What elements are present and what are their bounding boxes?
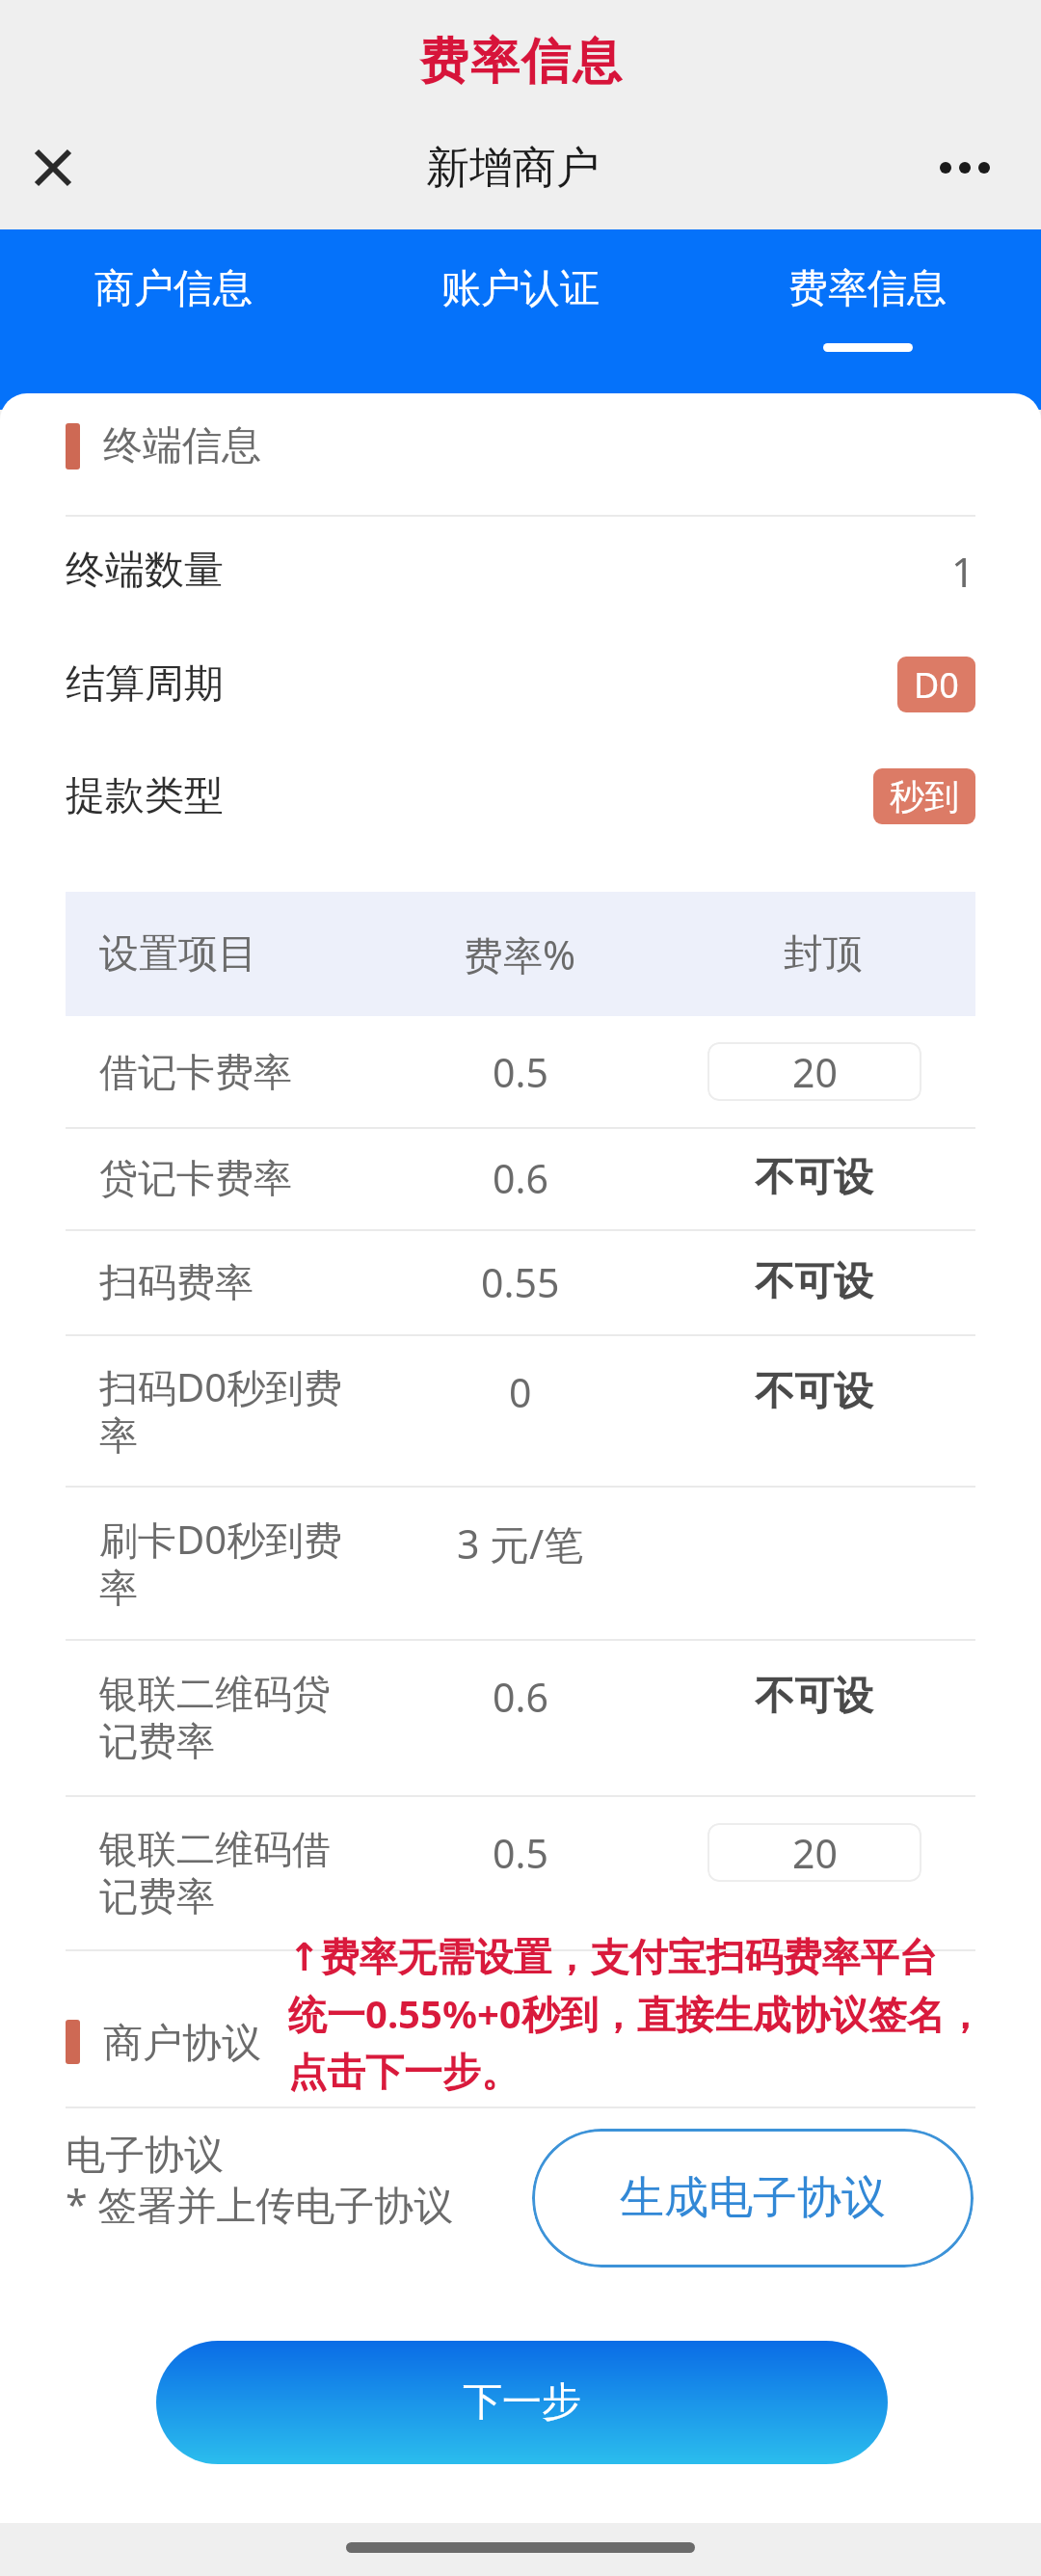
staticText: 0.5 [493, 1045, 548, 1099]
staticText: 封顶 [784, 929, 863, 979]
staticText: 贷记卡费率 [99, 1154, 292, 1202]
button[interactable]: 下一步 [156, 2341, 888, 2464]
staticText: D0 [914, 661, 959, 709]
button[interactable]: 扫码D0秒到费 率 [66, 1334, 975, 1486]
staticText: 提款类型 [66, 771, 224, 821]
staticText: 扫码D0秒到费 率 [99, 1360, 343, 1460]
button[interactable]: 提款类型 [0, 740, 1041, 852]
staticText: 不可设 [755, 1672, 873, 1722]
staticText: 结算周期 [66, 659, 224, 710]
staticText: ↑费率无需设置，支付宝扫码费率平台 统一0.55%+0秒到，直接生成协议签名， … [288, 1933, 984, 2097]
staticText: 银联二维码贷 记费率 [99, 1670, 332, 1765]
staticText: 新增商户 [426, 141, 600, 196]
button[interactable]: Close [0, 106, 106, 229]
button[interactable]: 扫码费率 [66, 1229, 975, 1334]
staticText: 费率% [464, 927, 576, 981]
staticText: 商户信息 [94, 264, 253, 314]
button[interactable]: 商户信息 [0, 229, 347, 410]
staticText: 下一步 [463, 2377, 581, 2428]
staticText: 不可设 [755, 1257, 873, 1307]
staticText: 0.55 [481, 1255, 560, 1309]
button[interactable]: 20 [707, 1042, 921, 1101]
button[interactable]: 账户认证 [347, 229, 694, 410]
staticText: 0.6 [493, 1151, 548, 1205]
staticText: 终端信息 [103, 421, 261, 471]
button[interactable]: 费率信息 [694, 229, 1041, 410]
button[interactable]: More options [920, 106, 1041, 229]
staticText: 电子协议 * 签署并上传电子协议 [66, 2131, 454, 2231]
staticText: 商户协议 [103, 2019, 261, 2065]
staticText: 借记卡费率 [99, 1048, 292, 1096]
staticText: 不可设 [755, 1367, 873, 1417]
staticText: 3 元/笔 [457, 1516, 584, 1570]
staticText: 设置项目 [99, 929, 257, 979]
staticText: 扫码费率 [99, 1258, 254, 1306]
staticText: 秒到 [890, 775, 959, 818]
staticText: 费率信息 [788, 264, 947, 314]
button[interactable]: 刷卡D0秒到费 率 [66, 1486, 975, 1639]
staticText: 刷卡D0秒到费 率 [99, 1513, 343, 1612]
staticText: 0.5 [493, 1826, 548, 1880]
button[interactable]: 银联二维码贷 记费率 [66, 1639, 975, 1795]
button[interactable]: 借记卡费率 [66, 1016, 975, 1127]
staticText: 1 [951, 544, 975, 599]
staticText: 账户认证 [441, 264, 600, 314]
button[interactable]: 结算周期 [0, 629, 1041, 740]
staticText: 0 [509, 1365, 532, 1419]
staticText: 银联二维码借 记费率 [99, 1825, 332, 1920]
staticText: 20 [792, 1045, 838, 1099]
button[interactable]: 银联二维码借 记费率 [66, 1795, 975, 1949]
button[interactable]: 贷记卡费率 [66, 1127, 975, 1229]
button[interactable]: 终端数量 [0, 515, 1041, 627]
staticText: 终端数量 [66, 546, 224, 596]
staticText: 生成电子协议 [620, 2170, 886, 2226]
staticText: 费率信息 [418, 31, 623, 93]
staticText: 不可设 [755, 1153, 873, 1203]
button[interactable]: 生成电子协议 [532, 2129, 974, 2267]
button[interactable]: 20 [707, 1823, 921, 1882]
staticText: 20 [792, 1826, 838, 1880]
staticText: 0.6 [493, 1670, 548, 1724]
